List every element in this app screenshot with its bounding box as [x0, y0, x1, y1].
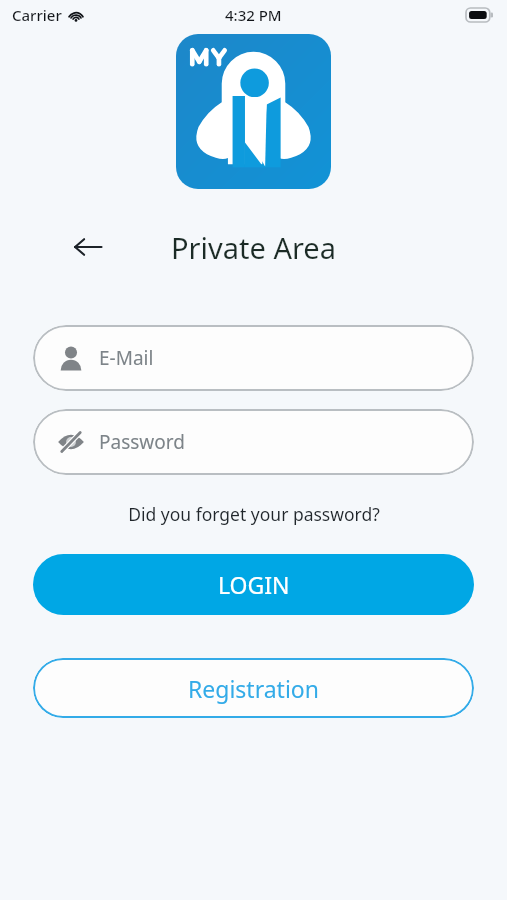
button[interactable]: LOGIN [33, 554, 474, 615]
staticText: E-Mail [99, 345, 154, 371]
staticText: Did you forget your password? [128, 502, 380, 526]
button[interactable]: Did you forget your password? [0, 502, 507, 526]
staticText: Password [99, 429, 185, 455]
button[interactable]: Back [66, 225, 110, 269]
button[interactable]: E-Mail [33, 325, 474, 391]
staticText: LOGIN [218, 569, 290, 600]
staticText: Carrier [12, 5, 62, 25]
staticText: Private Area [171, 228, 336, 267]
staticText: Registration [188, 673, 319, 704]
staticText: 4:32 PM [225, 5, 282, 25]
button[interactable]: Password [33, 409, 474, 475]
button[interactable]: Registration [33, 658, 474, 718]
